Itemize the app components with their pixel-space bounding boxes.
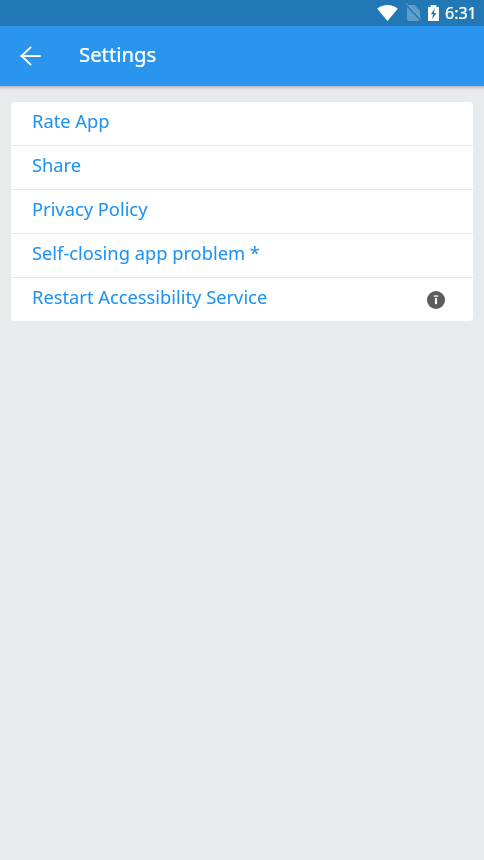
button[interactable]: Share [11, 146, 473, 189]
button[interactable]: Back [9, 34, 52, 77]
button[interactable]: Rate App [11, 102, 473, 145]
button[interactable]: Privacy Policy [11, 190, 473, 233]
staticText: Rate App [32, 108, 110, 133]
button[interactable]: Info [423, 287, 449, 313]
staticText: Privacy Policy [32, 196, 148, 221]
staticText: Self-closing app problem * [32, 240, 260, 265]
staticText: Restart Accessibility Service [32, 284, 268, 309]
button[interactable]: Self-closing app problem * [11, 234, 473, 277]
staticText: 6:31 [445, 2, 477, 24]
button[interactable]: Restart Accessibility Service [11, 278, 473, 321]
staticText: Settings [79, 40, 157, 68]
staticText: Share [32, 152, 82, 177]
